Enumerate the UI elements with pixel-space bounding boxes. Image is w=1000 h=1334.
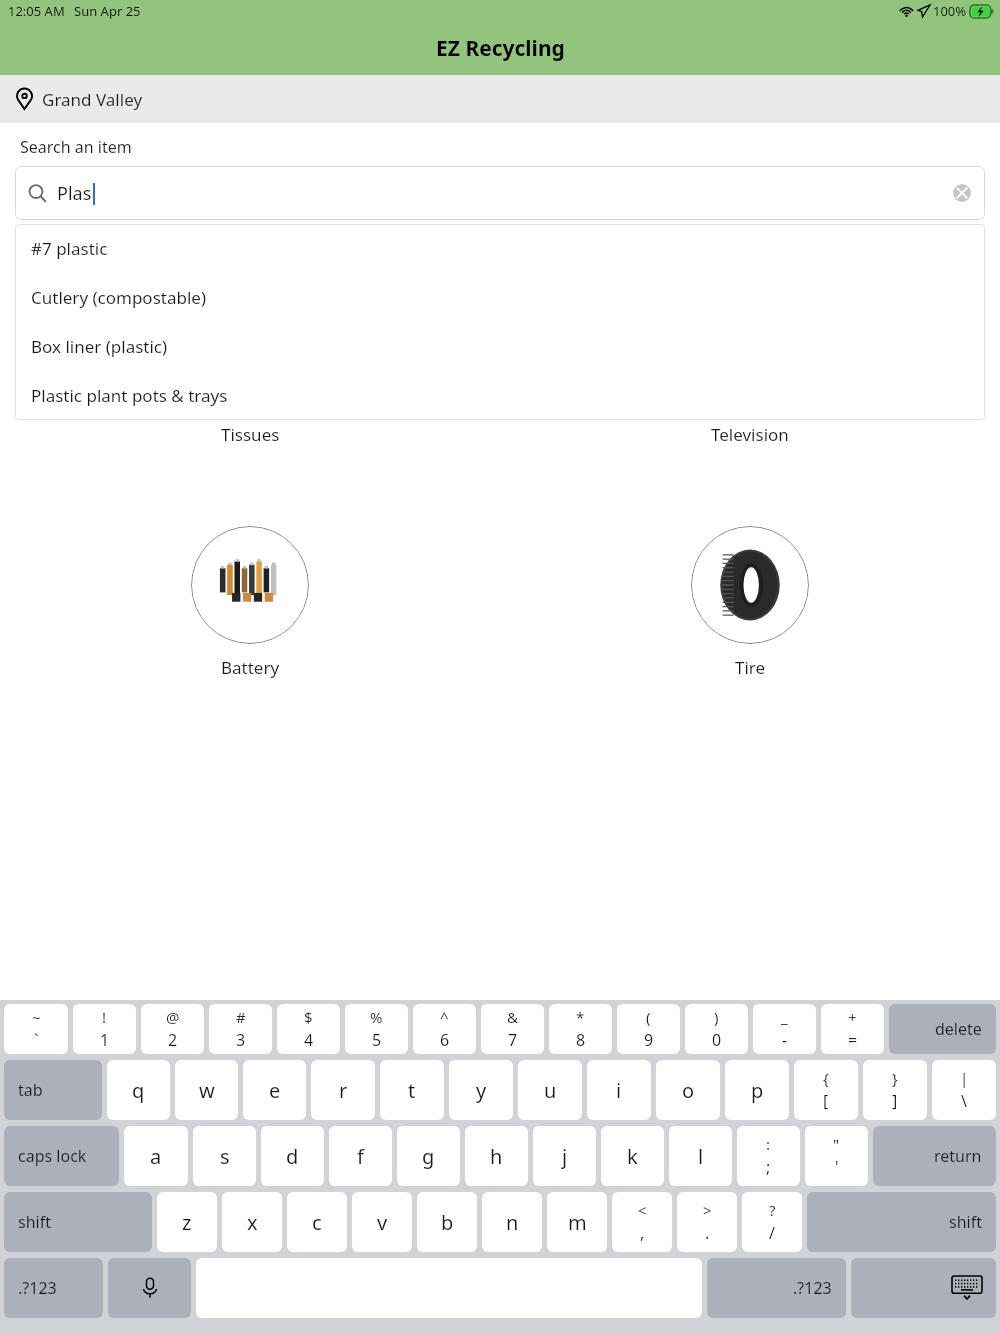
- button[interactable]: >: [677, 1192, 737, 1252]
- button[interactable]: Television: [687, 289, 813, 450]
- button[interactable]: Cutlery (compostable): [15, 273, 985, 322]
- button[interactable]: v: [352, 1192, 412, 1252]
- staticText: *: [576, 1007, 585, 1027]
- staticText: #7 plastic: [31, 237, 108, 260]
- staticText: Tire: [735, 656, 766, 679]
- button[interactable]: Battery: [187, 522, 313, 683]
- staticText: 7: [508, 1029, 518, 1051]
- staticText: return: [934, 1145, 982, 1167]
- button[interactable]: e: [243, 1060, 306, 1120]
- button[interactable]: d: [261, 1126, 324, 1186]
- button[interactable]: $: [277, 1004, 340, 1054]
- button[interactable]: g: [397, 1126, 460, 1186]
- button[interactable]: Tissues: [187, 289, 313, 450]
- staticText: Battery: [221, 656, 280, 679]
- button[interactable]: {: [794, 1060, 858, 1120]
- staticText: %: [370, 1007, 383, 1027]
- staticText: z: [182, 1209, 192, 1236]
- button[interactable]: ": [805, 1126, 868, 1186]
- button[interactable]: Tire: [687, 522, 813, 683]
- button[interactable]: q: [107, 1060, 170, 1120]
- button[interactable]: y: [449, 1060, 513, 1120]
- button[interactable]: @: [141, 1004, 204, 1054]
- button[interactable]: s: [193, 1126, 256, 1186]
- button[interactable]: m: [547, 1192, 607, 1252]
- button[interactable]: k: [601, 1126, 664, 1186]
- staticText: ': [835, 1156, 839, 1178]
- button[interactable]: j: [533, 1126, 596, 1186]
- staticText: .: [705, 1222, 710, 1244]
- button[interactable]: Hide keyboard: [851, 1258, 996, 1318]
- staticText: Cutlery (compostable): [31, 286, 206, 309]
- staticText: <: [638, 1200, 647, 1220]
- staticText: {: [823, 1068, 829, 1088]
- button[interactable]: r: [311, 1060, 375, 1120]
- staticText: Plastic plant pots & trays: [31, 384, 228, 407]
- button[interactable]: .?123: [707, 1258, 846, 1318]
- button[interactable]: delete: [889, 1004, 996, 1054]
- button[interactable]: :: [737, 1126, 800, 1186]
- staticText: ): [714, 1007, 719, 1027]
- button[interactable]: ^: [413, 1004, 476, 1054]
- staticText: ": [833, 1134, 840, 1154]
- button[interactable]: t: [380, 1060, 444, 1120]
- button[interactable]: z: [157, 1192, 217, 1252]
- button[interactable]: Clear search: [953, 184, 971, 202]
- button[interactable]: shift: [807, 1192, 996, 1252]
- staticText: q: [132, 1077, 145, 1104]
- button[interactable]: _: [753, 1004, 816, 1054]
- button[interactable]: ?: [742, 1192, 802, 1252]
- button[interactable]: .?123: [4, 1258, 103, 1318]
- button[interactable]: ): [685, 1004, 748, 1054]
- button[interactable]: %: [345, 1004, 408, 1054]
- staticText: i: [616, 1077, 622, 1104]
- button[interactable]: +: [821, 1004, 884, 1054]
- button[interactable]: a: [124, 1126, 188, 1186]
- button[interactable]: }: [863, 1060, 927, 1120]
- button[interactable]: f: [329, 1126, 392, 1186]
- button[interactable]: Dictate: [108, 1258, 191, 1318]
- staticText: ;: [766, 1156, 771, 1178]
- button[interactable]: w: [175, 1060, 238, 1120]
- staticText: &: [507, 1007, 518, 1027]
- staticText: `: [34, 1029, 39, 1051]
- staticText: s: [220, 1143, 230, 1170]
- button[interactable]: b: [417, 1192, 477, 1252]
- button[interactable]: &: [481, 1004, 544, 1054]
- button[interactable]: Plas: [15, 166, 985, 220]
- button[interactable]: #7 plastic: [15, 224, 985, 273]
- button[interactable]: shift: [4, 1192, 152, 1252]
- button[interactable]: c: [287, 1192, 347, 1252]
- staticText: w: [199, 1077, 215, 1104]
- staticText: r: [339, 1077, 348, 1104]
- button[interactable]: ~: [4, 1004, 68, 1054]
- button[interactable]: l: [669, 1126, 732, 1186]
- button[interactable]: Box liner (plastic): [15, 322, 985, 371]
- button[interactable]: *: [549, 1004, 612, 1054]
- button[interactable]: u: [518, 1060, 582, 1120]
- staticText: shift: [949, 1211, 982, 1233]
- button[interactable]: caps lock: [4, 1126, 119, 1186]
- staticText: j: [562, 1143, 568, 1170]
- button[interactable]: !: [73, 1004, 136, 1054]
- button[interactable]: return: [873, 1126, 996, 1186]
- staticText: h: [490, 1143, 503, 1170]
- button[interactable]: n: [482, 1192, 542, 1252]
- button[interactable]: x: [222, 1192, 282, 1252]
- staticText: o: [682, 1077, 695, 1104]
- button[interactable]: p: [725, 1060, 789, 1120]
- staticText: EZ Recycling: [436, 34, 565, 63]
- staticText: p: [751, 1077, 764, 1104]
- button[interactable]: Plastic plant pots & trays: [15, 371, 985, 420]
- button[interactable]: tab: [4, 1060, 102, 1120]
- button[interactable]: o: [656, 1060, 720, 1120]
- button[interactable]: Grand Valley: [0, 75, 1000, 123]
- button[interactable]: h: [465, 1126, 528, 1186]
- button[interactable]: |: [932, 1060, 996, 1120]
- button[interactable]: (: [617, 1004, 680, 1054]
- button[interactable]: <: [612, 1192, 672, 1252]
- staticText: _: [781, 1007, 788, 1027]
- button[interactable]: #: [209, 1004, 272, 1054]
- button[interactable]: i: [587, 1060, 651, 1120]
